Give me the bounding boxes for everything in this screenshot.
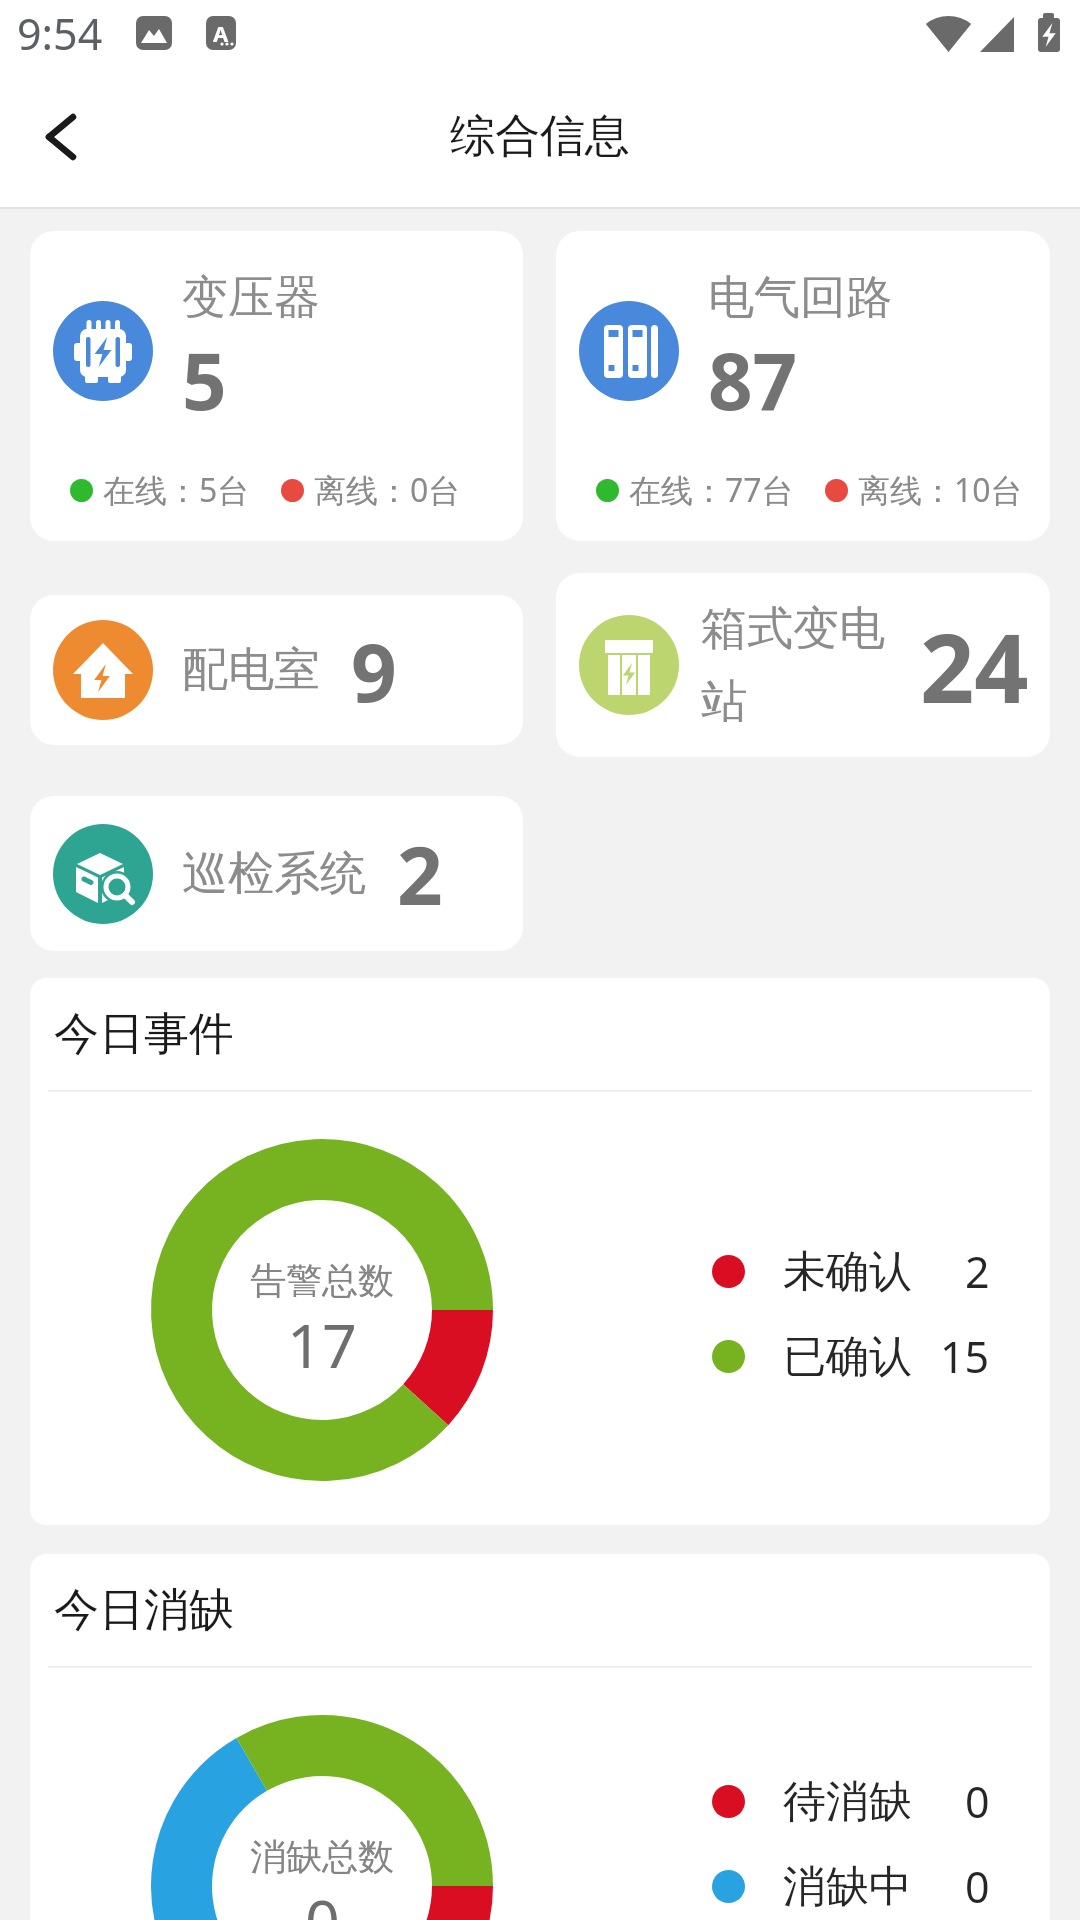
staticText: 24	[920, 601, 1029, 730]
staticText: 离线：0台	[314, 468, 461, 512]
button[interactable]: 箱式变电站	[556, 573, 1050, 757]
staticText: 已确认	[783, 1330, 912, 1384]
button[interactable]: 巡检系统	[30, 796, 523, 951]
staticText: 待消缺	[783, 1775, 912, 1829]
staticText: 今日事件	[54, 1006, 234, 1063]
staticText: 综合信息	[450, 108, 630, 165]
staticText: 离线：10台	[858, 468, 1023, 512]
button[interactable]: 电气回路	[556, 231, 1050, 541]
staticText: 15	[940, 1327, 990, 1386]
button[interactable]: 配电室	[30, 595, 523, 745]
staticText: 在线：77台	[629, 468, 794, 512]
staticText: 87	[708, 327, 798, 433]
staticText: 变压器	[182, 269, 320, 327]
staticText: 2	[965, 1242, 990, 1301]
staticText: 17	[287, 1303, 357, 1386]
staticText: 9:54	[17, 4, 103, 63]
staticText: 告警总数	[250, 1258, 394, 1303]
staticText: 巡检系统	[182, 845, 366, 903]
button[interactable]: 变压器	[30, 231, 523, 541]
staticText: 2	[397, 819, 443, 928]
button[interactable]	[30, 106, 92, 168]
staticText: 5	[182, 327, 227, 433]
staticText: 9	[351, 616, 397, 725]
button[interactable]: 今日事件	[30, 978, 1050, 1525]
staticText: 箱式变电站	[701, 600, 891, 730]
staticText: 在线：5台	[103, 468, 250, 512]
staticText: 消缺总数	[250, 1834, 394, 1879]
staticText: 未确认	[783, 1245, 912, 1299]
staticText: 0	[305, 1879, 340, 1920]
staticText: 消缺中	[783, 1860, 912, 1914]
button[interactable]: 今日消缺	[30, 1554, 1050, 1920]
staticText: 今日消缺	[54, 1582, 234, 1639]
staticText: 配电室	[182, 641, 320, 699]
staticText: A	[213, 18, 229, 48]
staticText: 电气回路	[708, 269, 892, 327]
staticText: 0	[965, 1857, 990, 1916]
staticText: 0	[965, 1772, 990, 1831]
